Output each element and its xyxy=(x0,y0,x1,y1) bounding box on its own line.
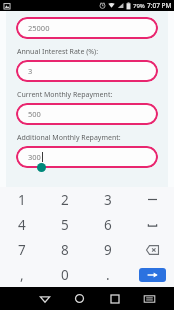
button[interactable]: Home xyxy=(62,287,97,310)
staticText: 79% xyxy=(133,2,145,10)
button[interactable]: 3 xyxy=(16,60,158,82)
button[interactable]: 9 xyxy=(86,237,130,262)
button[interactable]: 6 xyxy=(86,212,130,237)
button[interactable]: Switch keyboard xyxy=(132,287,167,310)
button[interactable]: 25000 xyxy=(16,17,158,39)
staticText: Annual Interest Rate (%): xyxy=(17,47,99,57)
staticText: 300 xyxy=(28,152,41,162)
button[interactable]: Backspace xyxy=(130,237,174,262)
staticText: . xyxy=(106,266,110,284)
button[interactable] xyxy=(130,212,174,237)
staticText: 6 xyxy=(104,216,112,234)
staticText: 4 xyxy=(18,216,26,234)
staticText: , xyxy=(20,266,24,284)
staticText: 2 xyxy=(61,191,69,209)
button[interactable]: 7 xyxy=(0,237,43,262)
staticText: 7 xyxy=(18,241,26,259)
staticText: Current Monthly Repayment: xyxy=(17,90,113,100)
button[interactable]: 2 xyxy=(43,187,86,212)
staticText: 500 xyxy=(28,109,41,119)
staticText: 0 xyxy=(61,266,69,284)
button[interactable]: 0 xyxy=(43,262,86,287)
staticText: Additional Monthly Repayment: xyxy=(17,133,121,143)
button[interactable]: Back xyxy=(27,287,62,310)
staticText: 3 xyxy=(28,66,33,76)
button[interactable]: . xyxy=(86,262,130,287)
staticText: 3 xyxy=(104,191,112,209)
staticText: 8 xyxy=(61,241,69,259)
button[interactable]: 4 xyxy=(0,212,43,237)
button[interactable]: , xyxy=(0,262,43,287)
staticText: 9 xyxy=(104,241,112,259)
button[interactable]: Recent apps xyxy=(97,287,132,310)
staticText: 1 xyxy=(18,191,26,209)
button[interactable]: 5 xyxy=(43,212,86,237)
button[interactable]: 3 xyxy=(86,187,130,212)
button[interactable]: 8 xyxy=(43,237,86,262)
staticText: 25000 xyxy=(28,23,50,33)
button[interactable]: 1 xyxy=(0,187,43,212)
staticText: 5 xyxy=(61,216,69,234)
button[interactable] xyxy=(130,187,174,212)
button[interactable]: 500 xyxy=(16,103,158,125)
staticText: 7:07 PM xyxy=(147,1,172,10)
button[interactable]: Enter xyxy=(130,262,174,287)
button[interactable]: 300 xyxy=(16,146,158,168)
